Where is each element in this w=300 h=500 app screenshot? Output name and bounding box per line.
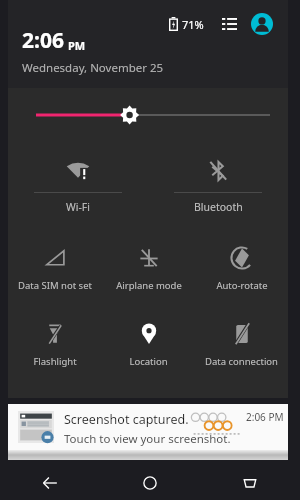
- staticText: Auto-rotate: [216, 279, 268, 292]
- staticText: Flashlight: [33, 355, 77, 368]
- button[interactable]: Home: [100, 466, 200, 500]
- button[interactable]: User profile: [250, 12, 274, 36]
- button[interactable]: Recents: [200, 466, 300, 500]
- button[interactable]: Bluetooth: [148, 158, 288, 220]
- button[interactable]: Quick settings list: [218, 13, 240, 35]
- button[interactable]: Data SIM not set: [8, 242, 102, 304]
- button[interactable]: Screenshot captured.: [8, 404, 288, 460]
- button[interactable]: Back: [0, 466, 100, 500]
- button[interactable]: Location: [102, 318, 195, 380]
- staticText: Wednesday, November 25: [22, 60, 164, 76]
- staticText: 2:06 PM: [246, 410, 284, 424]
- staticText: PM: [68, 38, 86, 53]
- button[interactable]: Airplane mode: [102, 242, 195, 304]
- button[interactable]: Auto-rotate: [195, 242, 288, 304]
- staticText: Location: [129, 355, 168, 368]
- staticText: Bluetooth: [194, 200, 243, 214]
- button[interactable]: Flashlight: [8, 318, 102, 380]
- staticText: 71%: [182, 17, 204, 32]
- staticText: 2:06: [22, 26, 64, 55]
- staticText: Data SIM not set: [18, 279, 92, 292]
- button[interactable]: Data connection: [195, 318, 288, 380]
- staticText: Data connection: [205, 355, 278, 368]
- staticText: Screenshot captured.: [64, 411, 189, 428]
- staticText: Wi-Fi: [66, 200, 91, 214]
- button[interactable]: Brightness: [8, 94, 288, 136]
- staticText: Airplane mode: [116, 279, 182, 292]
- button[interactable]: Wi-Fi: [8, 158, 148, 220]
- staticText: Touch to view your screenshot.: [64, 431, 231, 447]
